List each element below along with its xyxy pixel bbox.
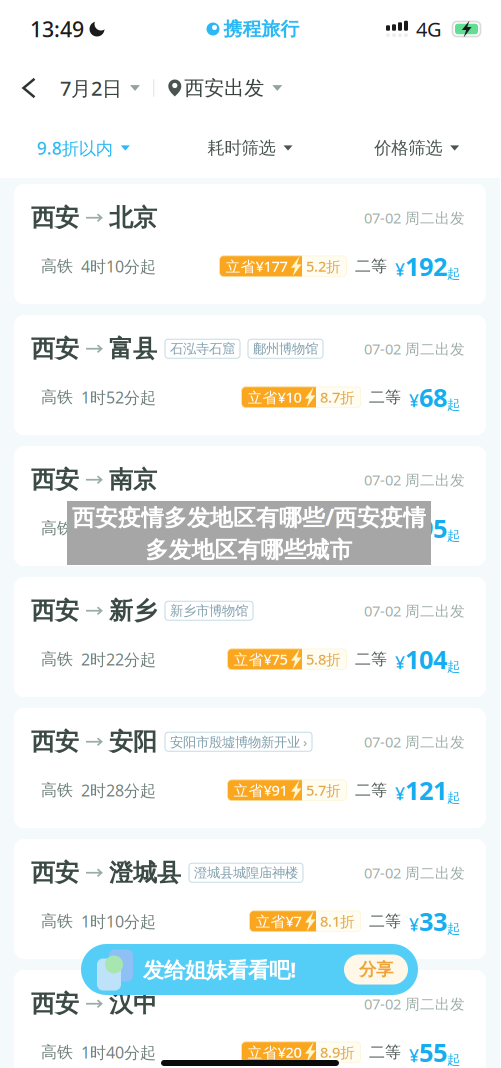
staticText: 高铁 xyxy=(41,1042,73,1062)
staticText: 二等 xyxy=(355,780,387,800)
staticText: 起 xyxy=(447,790,460,806)
staticText: ¥ xyxy=(395,782,405,805)
button[interactable]: 西安 xyxy=(14,839,486,959)
staticText: ¥ xyxy=(409,913,419,936)
staticText: 高铁 xyxy=(41,387,73,407)
staticText: 121 xyxy=(405,773,447,807)
staticText: 立省¥177 xyxy=(225,256,287,276)
staticText: 西安 xyxy=(31,858,79,887)
staticText: 1时52分起 xyxy=(81,387,156,408)
staticText: 1时10分起 xyxy=(81,911,156,932)
staticText: 多发地区有哪些城市 xyxy=(145,536,352,564)
staticText: 8.1折 xyxy=(320,911,355,931)
staticText: 西安 xyxy=(31,334,79,363)
staticText: 西安疫情多发地区有哪些/西安疫情 xyxy=(72,502,426,532)
staticText: ¥ xyxy=(409,389,419,412)
staticText: 1时40分起 xyxy=(81,1042,156,1063)
staticText: 石泓寺石窟 xyxy=(170,341,235,357)
staticText: 鄜州博物馆 xyxy=(253,341,318,357)
staticText: 13:49 xyxy=(30,15,84,43)
staticText: 68 xyxy=(419,380,447,414)
button[interactable]: 发给姐妹看看吧! xyxy=(81,944,418,995)
staticText: 5.2折 xyxy=(306,256,341,276)
staticText: 4时43分起 xyxy=(81,518,156,539)
button[interactable]: 9.8折以内 xyxy=(0,118,167,178)
staticText: 安阳 xyxy=(109,727,157,756)
staticText: 价格筛选 xyxy=(374,137,442,159)
staticText: 二等 xyxy=(369,1042,401,1062)
staticText: 104 xyxy=(405,642,447,676)
staticText: 4时10分起 xyxy=(81,256,156,277)
staticText: 起 xyxy=(447,266,460,282)
staticText: 分享 xyxy=(359,959,393,980)
staticText: 立省¥7 xyxy=(255,911,301,931)
button[interactable]: 西安 xyxy=(14,315,486,435)
staticText: ¥ xyxy=(395,258,405,281)
staticText: 立省¥172 xyxy=(225,518,287,538)
staticText: 起 xyxy=(447,921,460,937)
staticText: 5.8折 xyxy=(306,649,341,669)
staticText: 07-02 周二出发 xyxy=(364,208,465,227)
staticText: 汉中 xyxy=(109,989,157,1018)
staticText: 2时22分起 xyxy=(81,649,156,670)
staticText: 携程旅行 xyxy=(223,17,299,40)
staticText: 8.7折 xyxy=(320,387,355,407)
staticText: ¥ xyxy=(395,651,405,674)
staticText: 二等 xyxy=(369,387,401,407)
staticText: 8.9折 xyxy=(320,1042,355,1062)
button[interactable]: 西安 xyxy=(14,446,486,566)
button[interactable]: 西安 xyxy=(14,708,486,828)
button[interactable]: Back xyxy=(0,65,62,111)
staticText: 立省¥91 xyxy=(233,780,287,800)
button[interactable]: 耗时筛选 xyxy=(167,118,333,178)
staticText: 西安出发 xyxy=(184,76,264,100)
button[interactable]: 西安 xyxy=(14,970,486,1068)
staticText: 澄城县 xyxy=(109,858,181,887)
button[interactable]: 7月2日 xyxy=(62,65,140,111)
staticText: 5.6折 xyxy=(306,518,341,538)
staticText: 新乡 xyxy=(109,596,157,625)
staticText: 安阳市殷墟博物新开业 › xyxy=(170,733,307,751)
staticText: 二等 xyxy=(355,256,387,276)
button[interactable]: 西安 xyxy=(14,577,486,697)
staticText: 南京 xyxy=(109,465,157,494)
staticText: 立省¥20 xyxy=(247,1042,301,1062)
staticText: 立省¥10 xyxy=(247,387,301,407)
button[interactable]: 西安出发 xyxy=(168,65,282,111)
staticText: 二等 xyxy=(369,911,401,931)
staticText: 起 xyxy=(447,1052,460,1068)
staticText: 耗时筛选 xyxy=(207,137,275,159)
staticText: 195 xyxy=(405,511,447,545)
staticText: 9.8折以内 xyxy=(37,136,113,159)
staticText: ¥ xyxy=(409,1044,419,1067)
staticText: 2时28分起 xyxy=(81,780,156,801)
staticText: 起 xyxy=(447,659,460,675)
button[interactable]: 西安 xyxy=(14,184,486,304)
staticText: 07-02 周二出发 xyxy=(364,339,465,358)
staticText: 立省¥75 xyxy=(233,649,287,669)
staticText: 高铁 xyxy=(41,780,73,800)
staticText: 富县 xyxy=(109,334,157,363)
staticText: 起 xyxy=(447,397,460,413)
staticText: 发给姐妹看看吧! xyxy=(143,955,296,984)
staticText: 西安 xyxy=(31,596,79,625)
staticText: 高铁 xyxy=(41,649,73,669)
staticText: 33 xyxy=(419,904,447,938)
staticText: 5.7折 xyxy=(306,780,341,800)
staticText: 西安 xyxy=(31,465,79,494)
staticText: 西安 xyxy=(31,203,79,232)
staticText: 07-02 周二出发 xyxy=(364,470,465,489)
staticText: 高铁 xyxy=(41,518,73,538)
staticText: 高铁 xyxy=(41,256,73,276)
staticText: 7月2日 xyxy=(60,75,122,101)
staticText: 起 xyxy=(447,528,460,544)
staticText: ¥ xyxy=(395,520,405,543)
staticText: 西安 xyxy=(31,727,79,756)
staticText: 55 xyxy=(419,1035,447,1068)
staticText: 新乡市博物馆 xyxy=(170,603,248,619)
button[interactable]: 价格筛选 xyxy=(333,118,500,178)
staticText: 192 xyxy=(405,249,447,283)
staticText: 二等 xyxy=(355,649,387,669)
staticText: 07-02 周二出发 xyxy=(364,601,465,620)
staticText: 西安 xyxy=(31,989,79,1018)
